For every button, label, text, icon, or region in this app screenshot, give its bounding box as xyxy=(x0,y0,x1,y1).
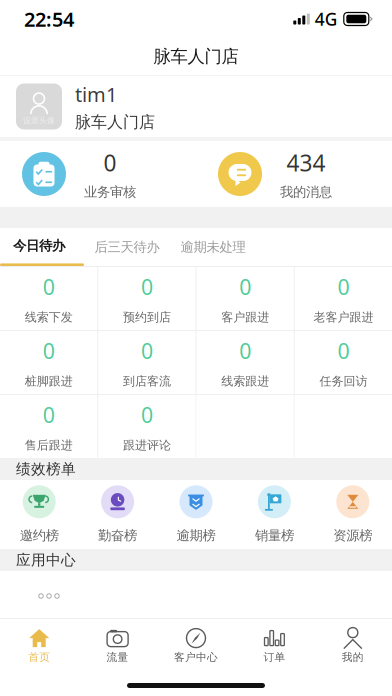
button[interactable]: 首页 xyxy=(0,619,78,671)
staticText: 脉车人门店 xyxy=(75,112,155,132)
button[interactable]: 0 xyxy=(295,267,392,330)
staticText: 434 xyxy=(286,148,325,178)
staticText: 0 xyxy=(239,336,251,365)
button[interactable]: 0 xyxy=(196,267,294,330)
staticText: 勤奋榜 xyxy=(98,527,137,544)
staticText: 任务回访 xyxy=(319,374,367,388)
staticText: 老客户跟进 xyxy=(313,310,373,324)
button[interactable]: 0 xyxy=(0,267,97,330)
staticText: 首页 xyxy=(28,651,50,664)
staticText: 跟进评论 xyxy=(123,438,171,452)
staticText: 4G xyxy=(315,7,338,30)
button[interactable]: 订单 xyxy=(235,619,314,671)
staticText: 预约到店 xyxy=(123,310,171,324)
button[interactable]: 勤奋榜 xyxy=(78,480,157,549)
staticText: 线索下发 xyxy=(25,310,73,324)
button[interactable]: 设置头像 xyxy=(0,76,392,137)
button[interactable]: 流量 xyxy=(78,619,157,671)
staticText: 0 xyxy=(43,400,55,429)
staticText: 订单 xyxy=(263,651,285,664)
staticText: 邀约榜 xyxy=(20,527,59,544)
button[interactable]: 0 xyxy=(295,331,392,394)
staticText: 桩脚跟进 xyxy=(25,374,73,388)
staticText: 逾期未处理 xyxy=(180,239,245,255)
button[interactable]: 今日待办 xyxy=(0,228,84,266)
button[interactable]: 0 xyxy=(98,267,195,330)
button[interactable]: 0 xyxy=(0,331,97,394)
button[interactable]: 资源榜 xyxy=(314,480,392,549)
button[interactable]: 0 xyxy=(98,395,195,458)
staticText: 今日待办 xyxy=(13,237,65,254)
staticText: tim1 xyxy=(75,81,117,107)
staticText: 0 xyxy=(239,272,251,301)
staticText: 0 xyxy=(141,272,153,301)
staticText: 0 xyxy=(103,148,116,178)
button[interactable]: 客户中心 xyxy=(157,619,235,671)
button[interactable]: 434 xyxy=(196,141,392,207)
staticText: 0 xyxy=(43,336,55,365)
staticText: 0 xyxy=(141,400,153,429)
staticText: 我的 xyxy=(342,651,364,664)
staticText: 逾期榜 xyxy=(176,527,215,544)
button[interactable]: 后三天待办 xyxy=(84,230,170,264)
staticText: 后三天待办 xyxy=(94,239,159,255)
staticText: 我的消息 xyxy=(280,184,332,200)
staticText: 资源榜 xyxy=(333,527,372,544)
staticText: 绩效榜单 xyxy=(16,460,76,478)
button[interactable]: 0 xyxy=(0,141,196,207)
button[interactable]: 我的 xyxy=(314,619,392,671)
staticText: 业务审核 xyxy=(84,184,136,200)
button[interactable]: 邀约榜 xyxy=(0,480,78,549)
button[interactable]: 销量榜 xyxy=(235,480,314,549)
staticText: 0 xyxy=(337,336,349,365)
staticText: 0 xyxy=(337,272,349,301)
staticText: 客户跟进 xyxy=(221,310,269,324)
staticText: 0 xyxy=(43,272,55,301)
button[interactable]: 0 xyxy=(0,395,97,458)
button[interactable]: 0 xyxy=(98,331,195,394)
staticText: 流量 xyxy=(107,651,129,664)
staticText: 售后跟进 xyxy=(25,438,73,452)
staticText: 应用中心 xyxy=(16,551,76,569)
staticText: 客户中心 xyxy=(174,651,218,664)
staticText: 脉车人门店 xyxy=(153,46,238,67)
button[interactable]: 逾期未处理 xyxy=(170,230,256,264)
staticText: 0 xyxy=(141,336,153,365)
staticText: 销量榜 xyxy=(255,527,294,544)
staticText: 22:54 xyxy=(24,6,74,32)
staticText: 线索跟进 xyxy=(221,374,269,388)
staticText: 设置头像 xyxy=(23,116,55,125)
staticText: 更多应用 xyxy=(23,617,75,633)
button[interactable]: 0 xyxy=(196,331,294,394)
staticText: 到店客流 xyxy=(123,374,171,388)
button[interactable]: 逾期榜 xyxy=(157,480,235,549)
